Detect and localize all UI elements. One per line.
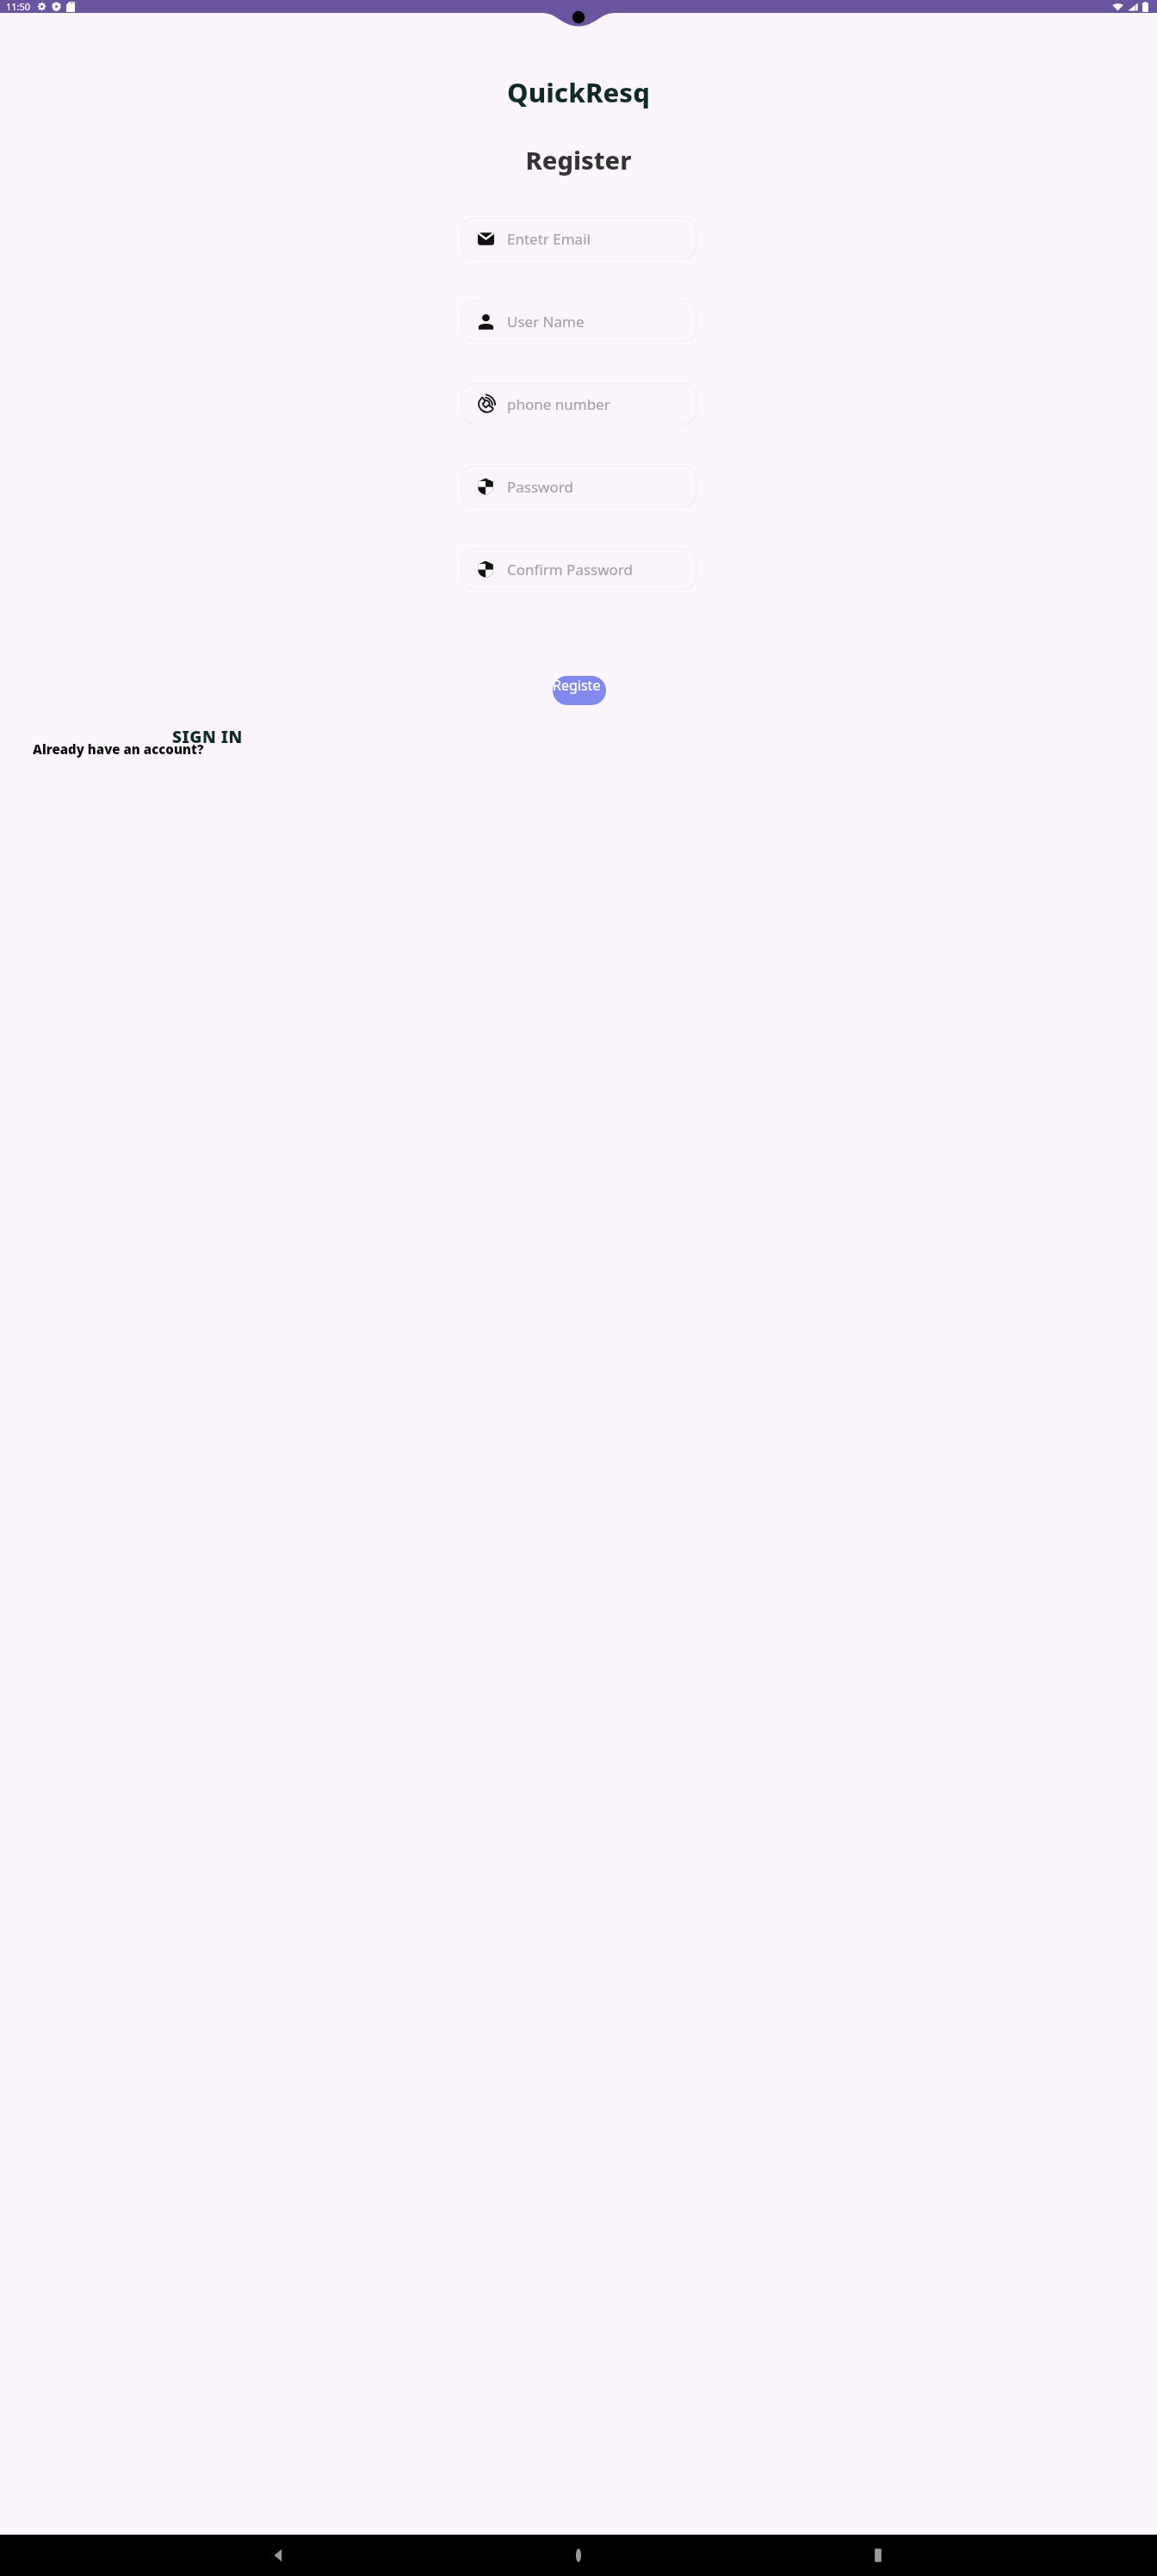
button[interactable]: SIGN IN: [172, 726, 243, 748]
staticText: QuickResq: [0, 74, 1157, 110]
button[interactable]: Home: [558, 2535, 599, 2576]
staticText: Password: [507, 477, 573, 497]
button[interactable]: Recent apps: [857, 2535, 899, 2576]
button[interactable]: User Name: [461, 300, 696, 342]
button[interactable]: Confirm Password: [461, 548, 696, 590]
staticText: 11:50: [6, 0, 31, 13]
button[interactable]: phone number: [461, 383, 696, 424]
staticText: Register: [0, 143, 1157, 176]
button[interactable]: Already have an account?: [33, 740, 204, 758]
button[interactable]: Register: [553, 676, 606, 705]
staticText: Entetr Email: [507, 229, 591, 249]
button[interactable]: Password: [461, 466, 696, 507]
staticText: SIGN IN: [172, 726, 243, 748]
staticText: Already have an account?: [33, 740, 204, 758]
staticText: phone number: [507, 394, 610, 414]
staticText: Register: [553, 676, 606, 705]
button[interactable]: Entetr Email: [461, 218, 696, 259]
staticText: User Name: [507, 312, 585, 331]
button[interactable]: Back: [258, 2535, 300, 2576]
staticText: Confirm Password: [507, 560, 633, 579]
